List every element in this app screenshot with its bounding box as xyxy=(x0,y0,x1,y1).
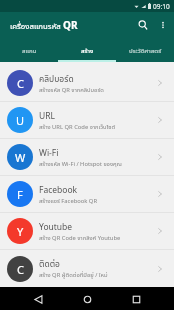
button[interactable]: สร้าง xyxy=(58,38,116,62)
staticText: สร้าง xyxy=(81,47,94,55)
staticText: Facebook xyxy=(39,184,78,196)
staticText: คลิปบอร์ด xyxy=(39,73,74,85)
staticText: C xyxy=(17,76,24,91)
staticText: สร้างรหัส Wi-Fi / Hotspot ของคุณ xyxy=(39,160,122,168)
button[interactable]: ประวัติศาสตร์ xyxy=(116,38,174,62)
staticText: สร้าง QR Code จากลิงค์ Youtube xyxy=(39,234,121,242)
staticText: QR xyxy=(63,18,78,32)
button[interactable]: C xyxy=(0,65,174,102)
staticText: สร้าง URL QR Code จากเว็บไซต์ xyxy=(39,123,116,131)
button[interactable]: Home xyxy=(78,290,96,308)
button[interactable]: F xyxy=(0,176,174,213)
staticText: สร้างรหัส QR จากคลิปบอร์ด xyxy=(39,86,104,94)
staticText: Wi-Fi xyxy=(39,147,59,159)
staticText: Y xyxy=(17,224,24,239)
staticText: สร้างแชร์ Facebook QR xyxy=(39,197,97,205)
staticText: F xyxy=(17,187,23,202)
button[interactable]: C xyxy=(0,250,174,287)
staticText: ประวัติศาสตร์ xyxy=(129,47,162,55)
button[interactable]: Recent apps xyxy=(127,290,145,308)
staticText: ติดต่อ xyxy=(39,258,60,270)
staticText: W xyxy=(15,150,26,165)
staticText: U xyxy=(16,113,25,128)
staticText: เครื่องสแกนรหัส xyxy=(10,21,63,32)
button[interactable]: More options xyxy=(154,16,172,34)
button[interactable]: สแกน xyxy=(0,38,58,62)
button[interactable]: U xyxy=(0,102,174,139)
staticText: Youtube xyxy=(39,221,73,233)
staticText: สร้าง QR ผู้ติดต่อที่มีอยู่ / ใหม่ xyxy=(39,271,108,279)
button[interactable]: Search xyxy=(133,15,153,35)
staticText: URL xyxy=(39,110,55,122)
staticText: สแกน xyxy=(22,47,37,55)
button[interactable]: Y xyxy=(0,213,174,250)
button[interactable]: Back xyxy=(29,290,47,308)
staticText: C xyxy=(17,262,24,277)
button[interactable]: W xyxy=(0,139,174,176)
staticText: 09:10 xyxy=(153,2,170,11)
